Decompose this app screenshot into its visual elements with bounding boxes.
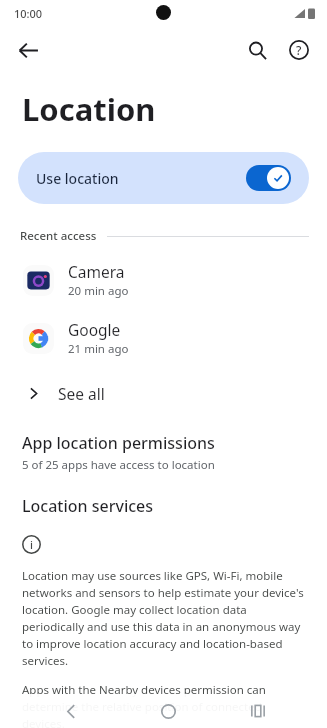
staticText: 5 of 25 apps have access to location bbox=[22, 457, 215, 473]
button[interactable]: Search bbox=[237, 30, 277, 70]
staticText: ? bbox=[296, 42, 302, 58]
staticText: Google bbox=[68, 319, 121, 340]
button[interactable]: Help bbox=[279, 30, 319, 70]
button[interactable]: Back bbox=[8, 30, 48, 70]
button[interactable]: Google bbox=[0, 314, 327, 362]
staticText: Apps with the Nearby devices permission … bbox=[22, 682, 307, 728]
staticText: Use location bbox=[36, 169, 119, 188]
staticText: Location services bbox=[22, 495, 154, 517]
staticText: See all bbox=[58, 383, 105, 404]
staticText: App location permissions bbox=[22, 432, 215, 454]
staticText: Recent access bbox=[20, 228, 97, 244]
button[interactable]: App location permissions bbox=[0, 432, 327, 473]
staticText: 21 min ago bbox=[68, 341, 129, 357]
button[interactable]: See all bbox=[0, 372, 327, 414]
button[interactable]: Back bbox=[56, 696, 86, 726]
staticText: Location may use sources like GPS, Wi-Fi… bbox=[22, 568, 307, 669]
button[interactable]: Camera bbox=[0, 256, 327, 304]
staticText: Camera bbox=[68, 261, 125, 282]
button[interactable]: Use location bbox=[18, 152, 309, 204]
staticText: 20 min ago bbox=[68, 283, 129, 299]
staticText: 10:00 bbox=[14, 6, 43, 21]
button[interactable]: Home bbox=[153, 696, 183, 726]
staticText: i bbox=[30, 537, 33, 552]
staticText: Location bbox=[22, 88, 156, 130]
button[interactable]: Recents bbox=[243, 696, 273, 726]
